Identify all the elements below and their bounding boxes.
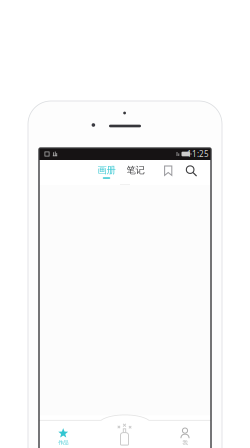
button[interactable]: 我: [160, 426, 210, 448]
staticText: 作品: [58, 439, 68, 446]
button[interactable]: 作品: [38, 426, 88, 448]
button[interactable]: 笔记: [122, 161, 150, 183]
staticText: 笔记: [127, 164, 145, 176]
staticText: 11:25: [187, 149, 209, 159]
button[interactable]: Bookmarks: [158, 161, 178, 181]
button[interactable]: 画册: [92, 161, 120, 183]
button[interactable]: Create: [101, 422, 147, 448]
staticText: 画册: [97, 164, 115, 176]
button[interactable]: Search: [181, 161, 201, 181]
staticText: 我: [182, 439, 187, 446]
